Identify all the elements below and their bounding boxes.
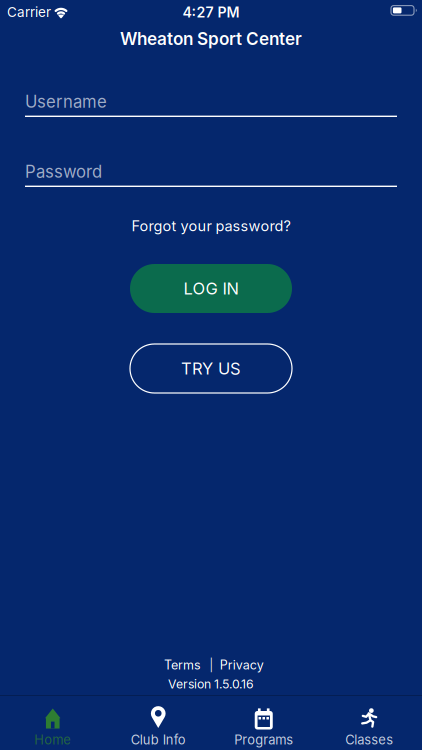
staticText: Version 1.5.0.16 — [168, 677, 254, 691]
button[interactable]: LOG IN — [130, 264, 292, 313]
button[interactable]: Club Info — [105, 695, 211, 750]
button[interactable]: Classes — [316, 695, 422, 750]
button[interactable]: Password — [0, 159, 422, 187]
staticText: Forgot your password? — [131, 217, 290, 235]
staticText: Programs — [234, 732, 293, 747]
staticText: TRY US — [181, 358, 241, 378]
button[interactable]: Forgot your password? — [131, 217, 290, 235]
button[interactable]: Home — [0, 695, 105, 750]
button[interactable]: TRY US — [130, 344, 292, 393]
staticText: LOG IN — [183, 278, 238, 298]
staticText: Carrier — [7, 4, 51, 20]
staticText: Club Info — [131, 732, 186, 747]
staticText: | — [209, 657, 213, 672]
button[interactable]: Privacy — [220, 657, 264, 673]
staticText: Password — [25, 162, 102, 182]
button[interactable]: Username — [0, 89, 422, 117]
staticText: Home — [34, 732, 71, 747]
staticText: Privacy — [220, 657, 264, 673]
button[interactable]: Terms — [164, 657, 201, 673]
staticText: 4:27 PM — [182, 4, 239, 21]
staticText: Username — [25, 92, 107, 112]
staticText: Terms — [164, 657, 201, 673]
staticText: Classes — [345, 732, 393, 747]
button[interactable]: Programs — [211, 695, 316, 750]
staticText: Wheaton Sport Center — [120, 28, 302, 49]
